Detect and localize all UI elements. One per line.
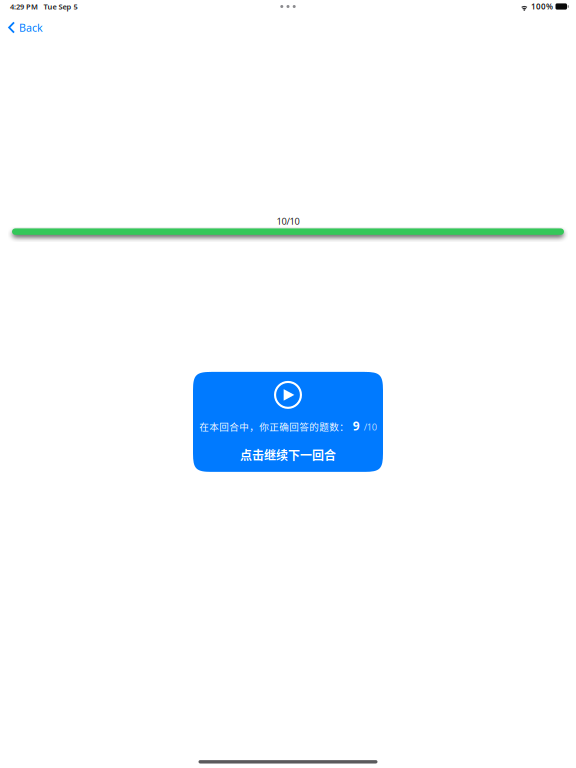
button[interactable]: 点击继续下一回合: [193, 372, 383, 472]
staticText: 点击继续下一回合: [240, 446, 336, 463]
staticText: 4:29 PM: [10, 1, 38, 12]
staticText: Back: [19, 20, 43, 35]
staticText: 9: [353, 418, 360, 434]
staticText: 在本回合中，你正确回答的题数：: [199, 419, 349, 433]
staticText: Tue Sep 5: [43, 1, 77, 12]
staticText: /10: [364, 421, 377, 433]
button[interactable]: Back: [0, 15, 55, 40]
staticText: 10/10: [276, 215, 299, 227]
staticText: 100%: [531, 1, 553, 12]
